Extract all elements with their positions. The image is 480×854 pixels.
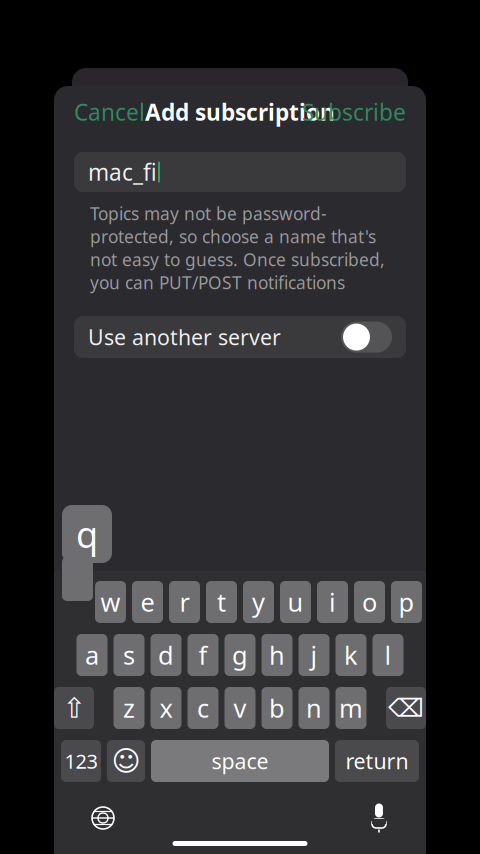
button[interactable]: a [76,634,107,676]
button[interactable]: g [224,634,255,676]
button[interactable]: 123 [61,740,101,782]
staticText: n [306,691,322,725]
button[interactable]: v [224,687,255,729]
button[interactable]: l [372,634,403,676]
staticText: Cancel [74,97,145,127]
button[interactable]: b [261,687,292,729]
button[interactable]: x [150,687,181,729]
button[interactable]: Subscribe [286,87,422,137]
staticText: q [76,510,98,558]
button[interactable]: i [317,581,348,623]
button[interactable]: n [298,687,329,729]
staticText: l [384,638,391,672]
staticText: u [287,585,303,619]
button[interactable]: Shift [54,687,94,729]
button[interactable]: h [261,634,292,676]
button[interactable]: o [354,581,385,623]
staticText: Add subscription [145,97,335,127]
staticText: a [85,638,99,672]
button[interactable]: s [113,634,144,676]
staticText: h [269,638,285,672]
button[interactable]: d [150,634,181,676]
staticText: e [140,585,154,619]
button[interactable]: p [391,581,422,623]
button[interactable]: m [335,687,366,729]
staticText: o [362,585,377,619]
button[interactable]: f [187,634,218,676]
button[interactable]: Delete [386,687,426,729]
staticText: mac_fi [88,157,157,187]
staticText: k [344,638,358,672]
button[interactable]: k [335,634,366,676]
staticText: d [158,638,174,672]
staticText: t [217,585,226,619]
button[interactable]: j [298,634,329,676]
button[interactable]: e [132,581,163,623]
staticText: p [398,585,414,619]
staticText: space [211,747,268,775]
button[interactable]: space [151,740,329,782]
button[interactable]: mac_fi [74,152,406,192]
button[interactable]: Emoji [107,740,145,782]
button[interactable]: z [113,687,144,729]
staticText: Use another server [88,323,281,351]
button[interactable]: r [169,581,200,623]
button[interactable]: w [95,581,126,623]
button[interactable]: u [280,581,311,623]
button[interactable]: Dictation [358,795,400,841]
button[interactable]: c [187,687,218,729]
staticText: Subscribe [302,97,406,127]
staticText: x [159,691,172,725]
staticText: w [100,585,120,619]
staticText: ⇧ [62,692,85,724]
staticText: f [198,638,207,672]
staticText: ☺ [111,745,140,777]
staticText: b [269,691,285,725]
button[interactable]: t [206,581,237,623]
button[interactable]: Use another server [74,316,406,358]
button[interactable]: y [243,581,274,623]
staticText: s [123,638,135,672]
staticText: c [197,691,209,725]
staticText: 123 [64,748,97,774]
staticText: Topics may not be password-protected, so… [90,202,385,294]
button[interactable]: Next keyboard [80,795,126,841]
staticText: v [233,691,246,725]
staticText: z [123,691,135,725]
staticText: ⌫ [388,694,424,722]
staticText: g [232,638,248,672]
staticText: y [252,585,265,619]
button[interactable]: return [335,740,419,782]
staticText: j [310,638,317,672]
staticText: r [179,585,189,619]
staticText: i [329,585,336,619]
staticText: m [339,691,363,725]
staticText: return [345,747,408,775]
button[interactable]: Cancel [58,87,161,137]
